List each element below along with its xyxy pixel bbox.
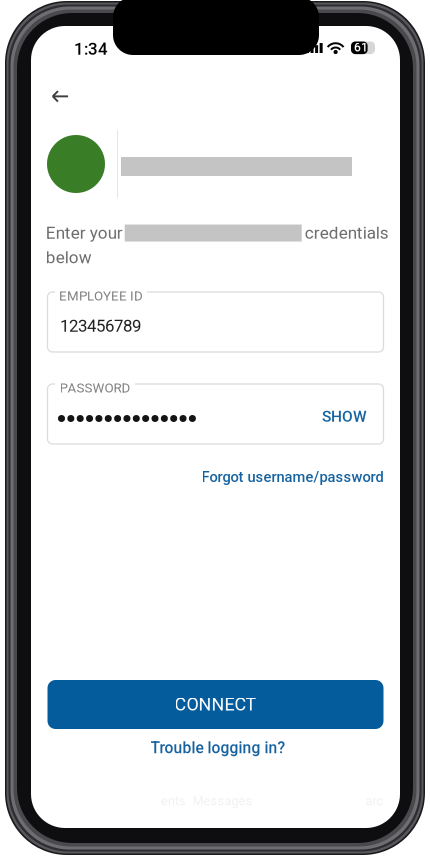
staticText: Messages — [192, 794, 252, 808]
staticText: PASSWORD — [59, 380, 130, 396]
staticText: below — [46, 247, 92, 267]
staticText: arc — [365, 794, 383, 808]
staticText: ents — [161, 794, 186, 808]
staticText: SHOW — [322, 407, 367, 425]
staticText: Enter your — [46, 223, 123, 243]
staticText: 61 — [354, 40, 368, 54]
button[interactable]: CONNECT — [47, 680, 383, 729]
staticText: Forgot username/password — [201, 468, 383, 486]
staticText: EMPLOYEE ID — [59, 288, 143, 304]
staticText: credentials — [305, 223, 389, 243]
staticText: CONNECT — [174, 694, 256, 715]
button[interactable]: Forgot username/password — [197, 464, 383, 490]
button[interactable]: SHOW — [321, 401, 367, 435]
button[interactable]: Back — [40, 68, 86, 114]
staticText: Trouble logging in? — [150, 739, 285, 757]
staticText: 123456789 — [60, 316, 141, 336]
staticText: 1:34 — [74, 39, 108, 59]
button[interactable]: Trouble logging in? — [128, 735, 308, 761]
